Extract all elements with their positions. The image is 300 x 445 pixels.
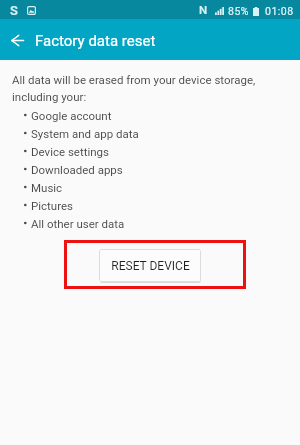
staticText: RESET DEVICE [111,259,190,273]
staticText: Music [31,181,63,194]
staticText: Pictures [31,199,73,212]
staticText: All other user data [31,217,125,230]
staticText: 85% [228,5,249,17]
staticText: Device settings [31,145,110,158]
staticText: All data will be erased from your device… [12,73,256,104]
button[interactable]: RESET DEVICE [99,249,201,282]
staticText: System and app data [31,127,139,140]
staticText: Google account [31,109,112,122]
staticText: Downloaded apps [31,163,123,176]
staticText: S [10,3,18,18]
staticText: N [199,3,208,16]
button[interactable]: Navigate up [1,20,33,61]
staticText: Factory data reset [35,32,156,50]
staticText: 01:08 [265,5,294,17]
